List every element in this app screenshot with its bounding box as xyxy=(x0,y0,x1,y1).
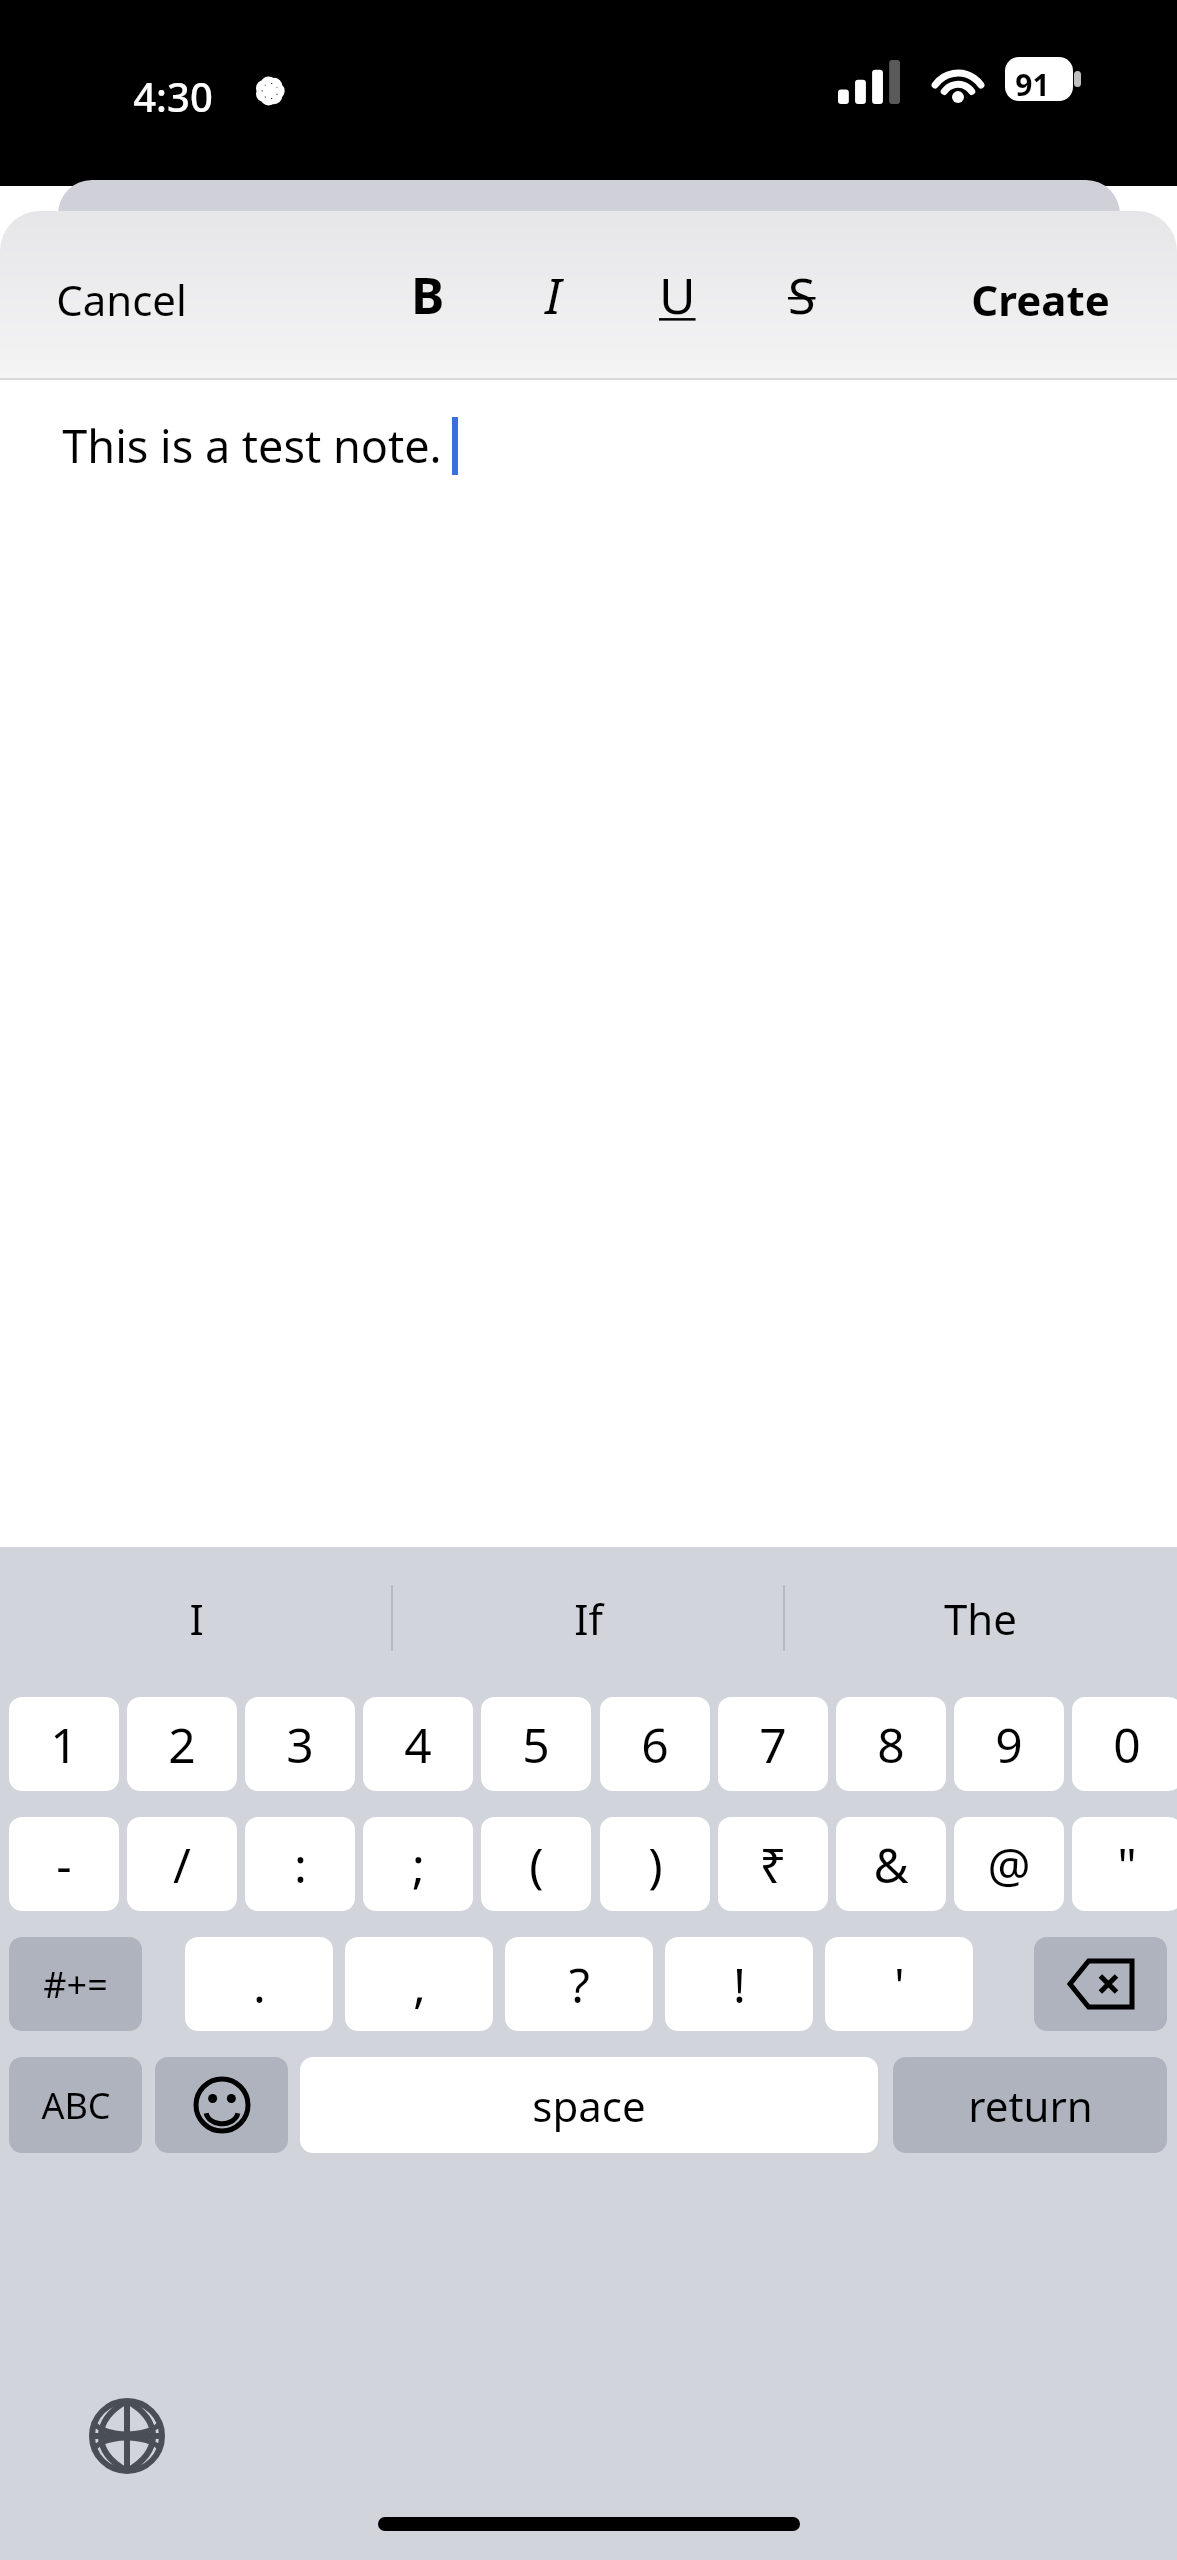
button[interactable]: Create xyxy=(955,259,1126,340)
button[interactable]: This is a test note. xyxy=(62,415,442,476)
button[interactable]: 1 xyxy=(9,1697,119,1791)
button[interactable]: ? xyxy=(505,1937,653,2031)
button[interactable]: return xyxy=(893,2057,1167,2153)
button[interactable]: #+= xyxy=(9,1937,142,2031)
button[interactable]: ₹ xyxy=(718,1817,828,1911)
staticText: : xyxy=(294,1832,307,1897)
staticText: 8 xyxy=(877,1712,905,1777)
button[interactable]: ' xyxy=(825,1937,973,2031)
button[interactable]: 2 xyxy=(127,1697,237,1791)
staticText: space xyxy=(532,2077,646,2134)
staticText: / xyxy=(173,1832,191,1897)
staticText: ? xyxy=(569,1952,590,2017)
button[interactable]: - xyxy=(9,1817,119,1911)
staticText: Create xyxy=(971,271,1110,328)
staticText: 6 xyxy=(641,1712,669,1777)
button[interactable]: B xyxy=(383,251,473,339)
button[interactable]: , xyxy=(345,1937,493,2031)
staticText: ₹ xyxy=(759,1832,787,1897)
button[interactable]: 5 xyxy=(481,1697,591,1791)
staticText: This is a test note. xyxy=(62,415,442,476)
button[interactable]: Cancel xyxy=(40,259,203,340)
button[interactable]: I xyxy=(0,1547,392,1689)
staticText: I xyxy=(545,261,562,329)
button[interactable]: 8 xyxy=(836,1697,946,1791)
staticText: 91 xyxy=(1015,64,1050,105)
staticText: I xyxy=(189,1590,204,1647)
button[interactable]: & xyxy=(836,1817,946,1911)
button[interactable]: : xyxy=(245,1817,355,1911)
button[interactable]: Switch keyboard xyxy=(78,2387,176,2485)
button[interactable]: ( xyxy=(481,1817,591,1911)
staticText: The xyxy=(944,1590,1017,1647)
button[interactable]: ABC xyxy=(9,2057,142,2153)
button[interactable]: . xyxy=(185,1937,333,2031)
button[interactable]: Emoji xyxy=(155,2057,288,2153)
staticText: @ xyxy=(987,1832,1031,1897)
button[interactable]: 4 xyxy=(363,1697,473,1791)
staticText: 2 xyxy=(168,1712,196,1777)
staticText: 7 xyxy=(759,1712,787,1777)
button[interactable]: 7 xyxy=(718,1697,828,1791)
staticText: return xyxy=(968,2077,1093,2134)
staticText: U xyxy=(659,261,696,329)
staticText: , xyxy=(413,1952,426,2017)
button[interactable]: 9 xyxy=(954,1697,1064,1791)
button[interactable]: " xyxy=(1072,1817,1177,1911)
staticText: 0 xyxy=(1113,1712,1141,1777)
button[interactable]: ) xyxy=(600,1817,710,1911)
staticText: ; xyxy=(412,1832,425,1897)
staticText: ) xyxy=(648,1832,663,1897)
staticText: & xyxy=(873,1832,909,1897)
staticText: B xyxy=(411,261,445,329)
button[interactable]: U xyxy=(632,251,722,339)
button[interactable]: space xyxy=(300,2057,878,2153)
staticText: - xyxy=(56,1832,72,1897)
button[interactable]: Backspace xyxy=(1034,1937,1167,2031)
staticText: . xyxy=(253,1952,266,2017)
button[interactable]: I xyxy=(508,251,598,339)
button[interactable]: If xyxy=(392,1547,784,1689)
staticText: If xyxy=(574,1590,603,1647)
button[interactable]: The xyxy=(784,1547,1177,1689)
staticText: #+= xyxy=(43,1960,108,2009)
staticText: 5 xyxy=(522,1712,550,1777)
button[interactable]: ! xyxy=(665,1937,813,2031)
staticText: 3 xyxy=(286,1712,314,1777)
staticText: 9 xyxy=(995,1712,1023,1777)
staticText: ( xyxy=(529,1832,544,1897)
button[interactable]: 3 xyxy=(245,1697,355,1791)
button[interactable]: S xyxy=(757,251,847,339)
staticText: ' xyxy=(894,1952,905,2017)
staticText: ABC xyxy=(41,2081,111,2130)
button[interactable]: @ xyxy=(954,1817,1064,1911)
staticText: " xyxy=(1117,1832,1137,1897)
staticText: S xyxy=(788,261,816,329)
staticText: ! xyxy=(733,1952,746,2017)
button[interactable]: 0 xyxy=(1072,1697,1177,1791)
button[interactable]: ; xyxy=(363,1817,473,1911)
staticText: 4:30 xyxy=(133,69,213,123)
staticText: 1 xyxy=(50,1712,78,1777)
button[interactable]: 6 xyxy=(600,1697,710,1791)
button[interactable]: / xyxy=(127,1817,237,1911)
staticText: 4 xyxy=(404,1712,432,1777)
staticText: Cancel xyxy=(56,271,187,328)
